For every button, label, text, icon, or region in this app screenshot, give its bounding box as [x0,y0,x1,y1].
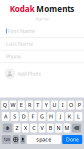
button[interactable]: Q [1,100,8,109]
staticText: R [28,101,31,109]
button[interactable]: M [63,123,70,132]
staticText: D [22,113,26,120]
staticText: S [13,113,16,120]
button[interactable]: E [18,100,25,109]
button[interactable]: A [2,112,9,121]
staticText: Sign Up [35,16,48,21]
staticText: Kodak [10,3,35,14]
staticText: X [24,124,27,132]
staticText: J [60,113,61,120]
staticText: B [49,124,52,132]
staticText: Q [3,101,7,109]
staticText: Moments [36,3,74,14]
staticText: L [77,113,80,120]
button[interactable]: Z [14,123,21,132]
staticText: P [78,101,81,109]
button[interactable]: Y [43,100,50,109]
button[interactable]: P [76,100,83,109]
staticText: space [36,136,51,143]
staticText: M [64,124,69,132]
button[interactable]: H [47,112,55,121]
button[interactable]: Add Photo [0,63,84,81]
staticText: I [62,101,64,109]
staticText: Phone [6,53,21,60]
button[interactable]: Next keyboard [13,135,19,144]
button[interactable]: J [56,112,64,121]
button[interactable]: K [65,112,73,121]
button[interactable]: X [22,123,29,132]
staticText: Done [66,136,79,143]
button[interactable]: I [59,100,66,109]
button[interactable]: B [47,123,54,132]
button[interactable]: 123 [2,135,11,144]
button[interactable]: V [39,123,45,132]
button[interactable]: L [74,112,82,121]
button[interactable]: Dictation [20,135,25,144]
staticText: N [57,124,61,132]
button[interactable]: O [68,100,74,109]
staticText: U [52,101,56,109]
button[interactable]: U [51,100,58,109]
button[interactable]: D [20,112,28,121]
button[interactable]: N [55,123,62,132]
button[interactable]: Done [62,135,82,144]
button[interactable]: G [38,112,46,121]
staticText: K [68,113,71,120]
staticText: First Name [8,27,35,35]
button[interactable]: R [26,100,33,109]
staticText: A [4,113,7,120]
staticText: Z [16,124,19,132]
staticText: V [40,124,43,132]
button[interactable]: C [30,123,37,132]
staticText: 123 [3,137,9,142]
staticText: Add Photo [17,70,41,77]
staticText: F [31,113,34,120]
staticText: Last Name [6,40,33,47]
button[interactable]: Delete [72,123,81,132]
button[interactable]: S [11,112,18,121]
button[interactable]: W [9,100,16,109]
staticText: O [69,101,73,109]
staticText: C [32,124,35,132]
staticText: T [36,101,39,109]
button[interactable]: Shift [3,123,12,132]
staticText: E [20,101,23,109]
staticText: G [40,113,44,120]
staticText: W [10,101,15,109]
staticText: Y [45,101,48,109]
button[interactable]: space [27,135,61,144]
button[interactable]: F [29,112,37,121]
staticText: H [49,113,53,120]
button[interactable]: T [34,100,41,109]
